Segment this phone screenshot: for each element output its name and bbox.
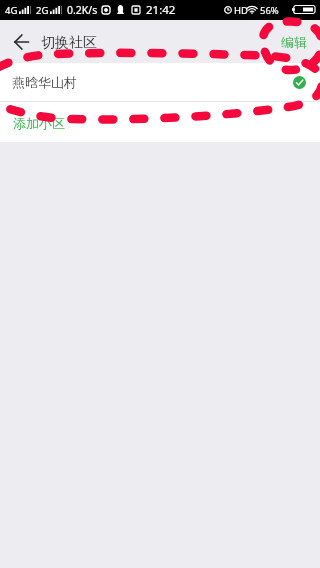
button[interactable]: 燕晗华山村 [0, 63, 320, 101]
staticText: 燕晗华山村 [12, 74, 77, 90]
staticText: 2G [36, 4, 49, 17]
staticText: 0.2K/s [67, 3, 98, 17]
staticText: 编辑 [281, 34, 307, 50]
staticText: 切换社区 [41, 34, 97, 52]
staticText: 56% [260, 4, 279, 17]
button[interactable]: 添加小区 [0, 102, 320, 142]
staticText: 添加小区 [13, 115, 65, 131]
button[interactable]: 编辑 [269, 20, 320, 63]
staticText: 4G [5, 4, 18, 17]
staticText: HD [234, 4, 248, 17]
button[interactable]: Back [0, 20, 42, 63]
staticText: 21:42 [146, 2, 176, 18]
